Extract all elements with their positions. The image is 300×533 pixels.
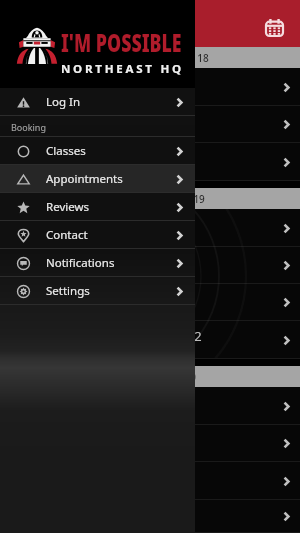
button[interactable]: [0, 462, 300, 500]
button[interactable]: [0, 143, 300, 181]
staticText: Booking: [11, 121, 46, 133]
button[interactable]: Appointments: [0, 165, 195, 193]
button[interactable]: [0, 68, 300, 106]
staticText: Log In: [46, 94, 81, 110]
button[interactable]: [0, 500, 300, 533]
button[interactable]: Full Body Conditioning 2: [0, 321, 300, 359]
staticText: Full Body Conditioning 2: [53, 327, 202, 345]
button[interactable]: Contact: [0, 221, 195, 249]
staticText: Appointments: [46, 171, 123, 187]
button[interactable]: Log In: [0, 88, 195, 116]
button[interactable]: Notifications: [0, 249, 195, 277]
staticText: Thursday, September 20: [80, 370, 197, 384]
staticText: Classes: [46, 143, 86, 159]
staticText: Contact: [46, 227, 88, 243]
staticText: Wednesday, September 19: [78, 192, 205, 206]
button[interactable]: [0, 106, 300, 143]
staticText: NORTHEAST HQ: [61, 61, 184, 76]
staticText: Notifications: [46, 255, 115, 271]
button[interactable]: Settings: [0, 277, 195, 305]
button[interactable]: Classes: [0, 137, 195, 165]
button[interactable]: Reviews: [0, 193, 195, 221]
button[interactable]: [0, 209, 300, 247]
button[interactable]: Calendar: [258, 6, 294, 42]
button[interactable]: [0, 387, 300, 425]
staticText: I'M POSSIBLE: [61, 26, 182, 59]
button[interactable]: [0, 284, 300, 321]
staticText: Reviews: [46, 199, 90, 215]
staticText: Settings: [46, 283, 90, 299]
staticText: Tuesday, September 18: [98, 51, 209, 65]
button[interactable]: [0, 247, 300, 284]
button[interactable]: [0, 425, 300, 462]
